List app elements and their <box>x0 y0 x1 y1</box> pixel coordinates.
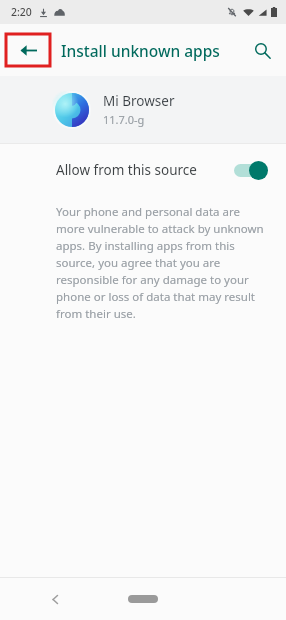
button[interactable]: Search <box>241 29 283 71</box>
button[interactable]: Home <box>128 595 158 603</box>
staticText: 2:20 <box>11 5 32 19</box>
staticText: Install unknown apps <box>61 40 220 61</box>
staticText: 11.7.0-g <box>103 112 145 127</box>
staticText: Mi Browser <box>103 92 175 110</box>
staticText: Your phone and personal data are more vu… <box>56 204 264 321</box>
button[interactable]: Back <box>38 582 72 616</box>
button[interactable]: Mi Browser <box>0 76 286 143</box>
button[interactable]: Allow from this source <box>0 144 286 196</box>
button[interactable]: Back <box>6 34 50 66</box>
staticText: Allow from this source <box>56 161 197 179</box>
